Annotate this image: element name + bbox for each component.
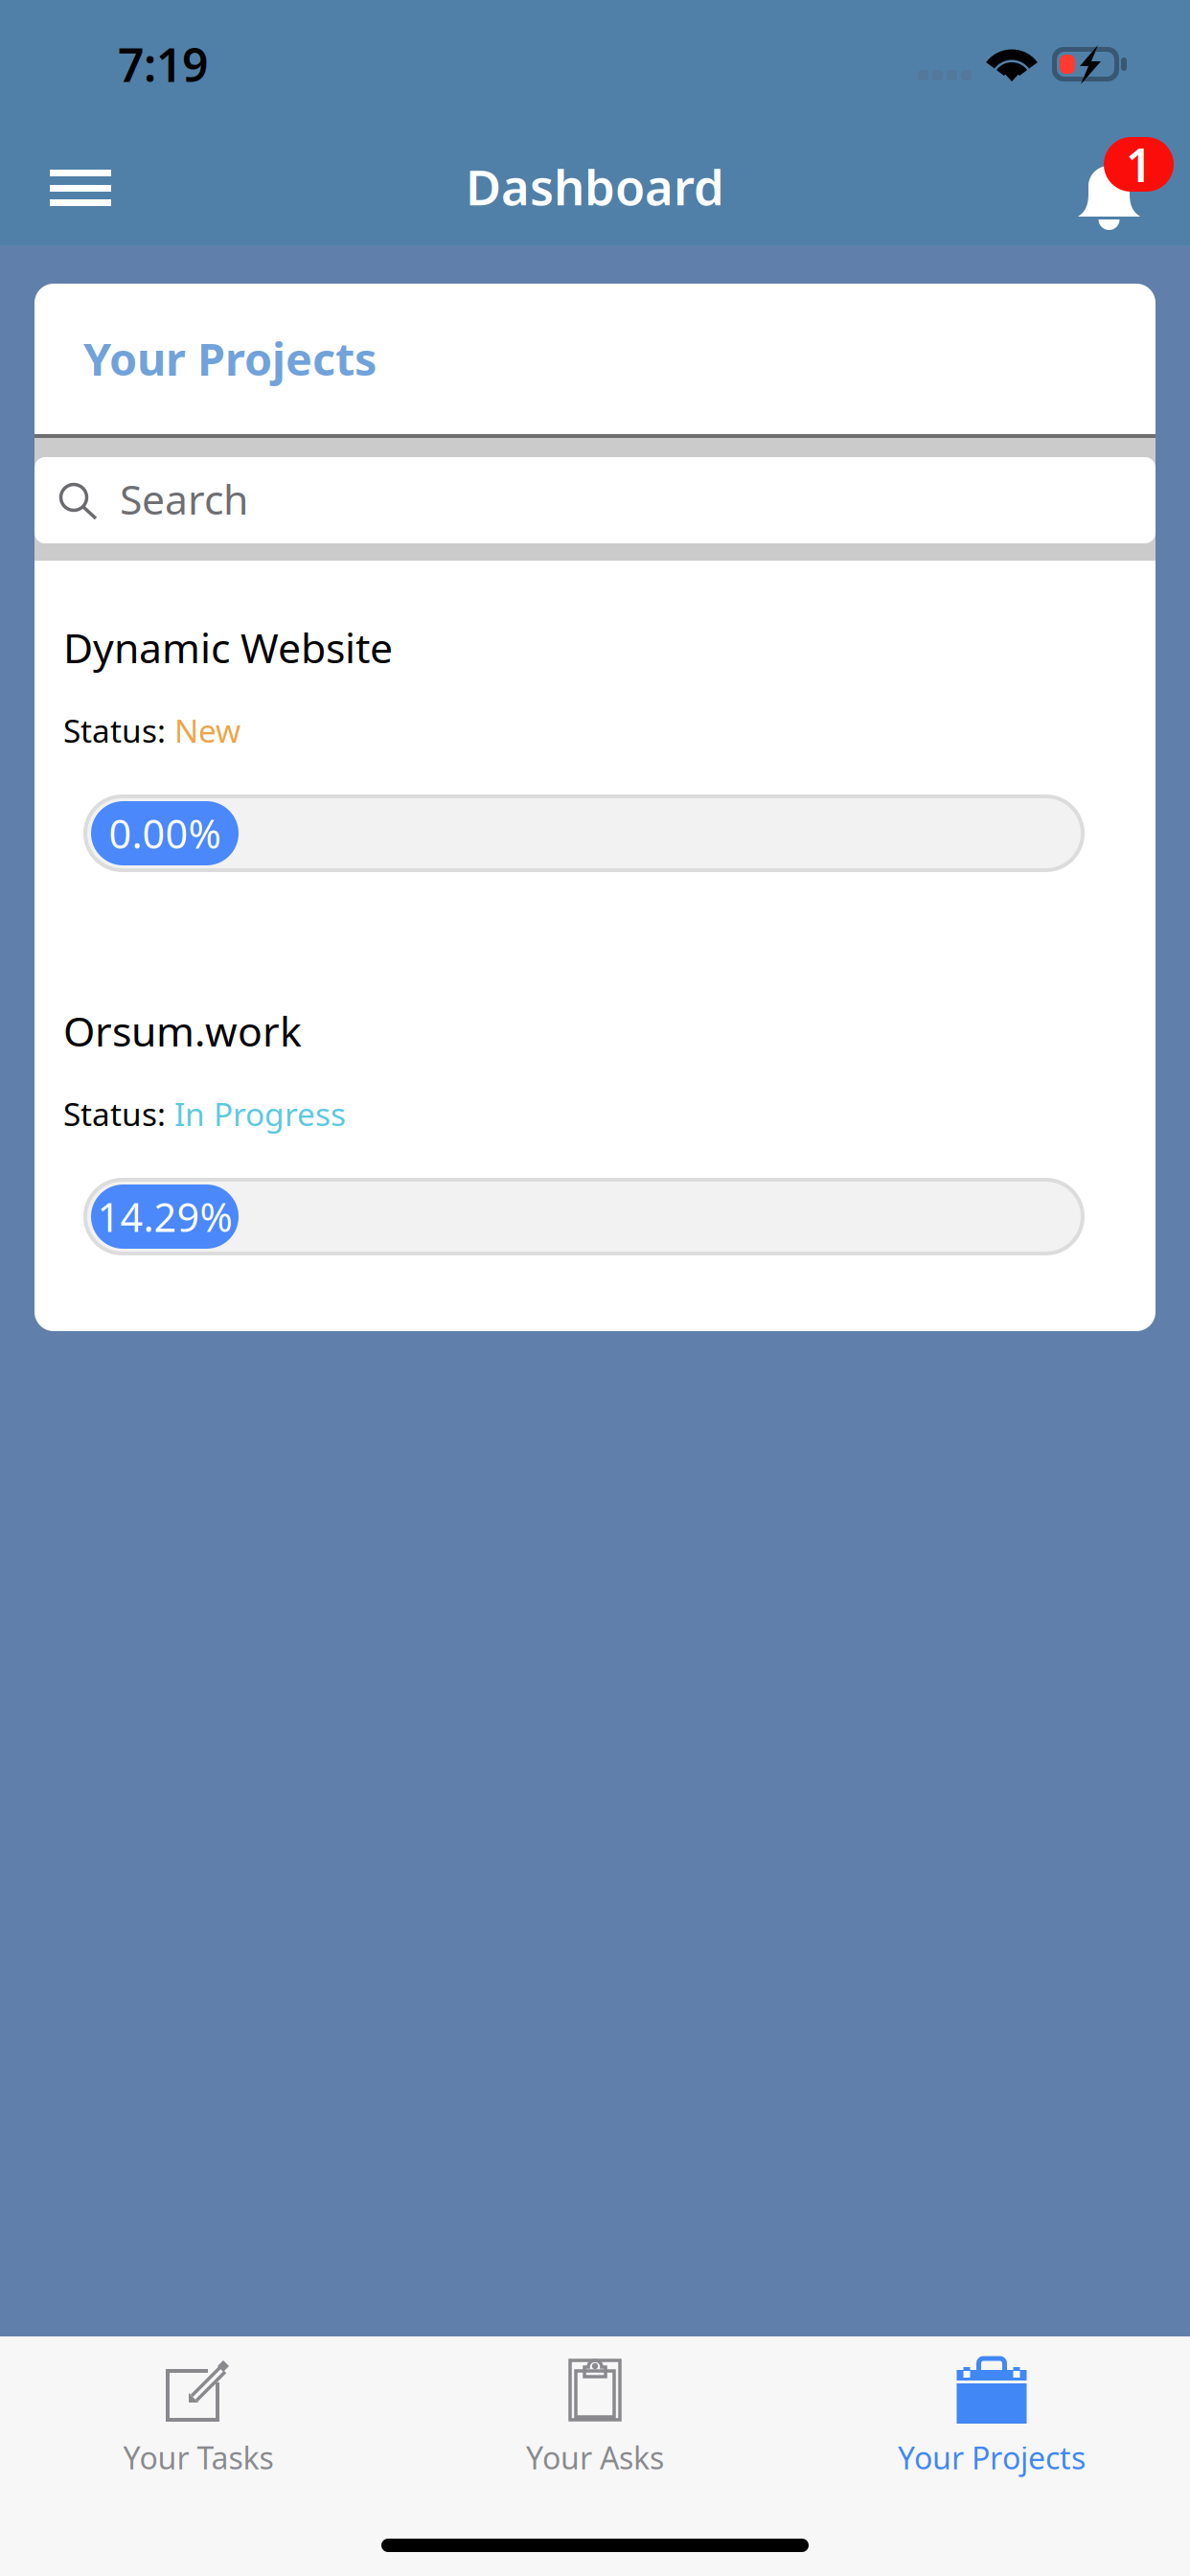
staticText: 0.00%	[109, 807, 221, 860]
button[interactable]: Notifications	[1054, 126, 1190, 245]
button[interactable]: Your Projects	[793, 2336, 1190, 2576]
staticText: Your Projects	[83, 329, 377, 388]
staticText: Status:	[63, 1092, 174, 1135]
staticText: Search	[120, 471, 248, 526]
staticText: Your Tasks	[123, 2437, 274, 2478]
button[interactable]: Your Tasks	[0, 2336, 397, 2576]
staticText: Dynamic Website	[63, 620, 393, 675]
staticText: Your Projects	[898, 2437, 1086, 2478]
staticText: Status:	[63, 709, 174, 752]
button[interactable]: Your Asks	[397, 2336, 793, 2576]
staticText: Your Asks	[526, 2437, 664, 2478]
staticText: New	[174, 709, 240, 752]
staticText: 1	[1126, 134, 1152, 195]
staticText: Orsum.work	[63, 1004, 302, 1058]
button[interactable]: Menu	[0, 126, 144, 245]
staticText: 7:19	[118, 34, 208, 95]
staticText: 14.29%	[97, 1190, 232, 1243]
staticText: In Progress	[174, 1092, 346, 1135]
staticText: Dashboard	[466, 154, 724, 219]
